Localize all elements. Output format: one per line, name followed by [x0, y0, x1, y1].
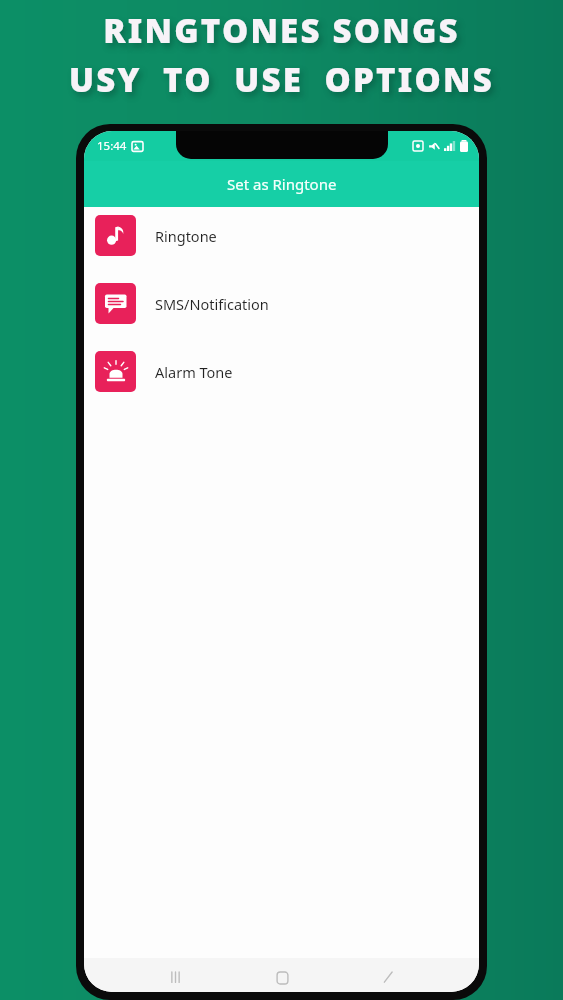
staticText: 15:44	[97, 138, 127, 154]
staticText: Ringtone	[155, 226, 217, 246]
button[interactable]: Home	[267, 972, 297, 992]
staticText: Set as Ringtone	[227, 174, 337, 194]
button[interactable]: Back	[373, 972, 403, 992]
button[interactable]: Alarm Tone	[84, 351, 479, 392]
staticText: Alarm Tone	[155, 362, 233, 382]
staticText: USY TO USE OPTIONS	[0, 57, 563, 102]
staticText: SMS/Notification	[155, 294, 269, 314]
button[interactable]: Ringtone	[84, 215, 479, 256]
button[interactable]: SMS/Notification	[84, 283, 479, 324]
button[interactable]: Recents	[160, 972, 190, 992]
staticText: RINGTONES SONGS	[0, 8, 563, 53]
